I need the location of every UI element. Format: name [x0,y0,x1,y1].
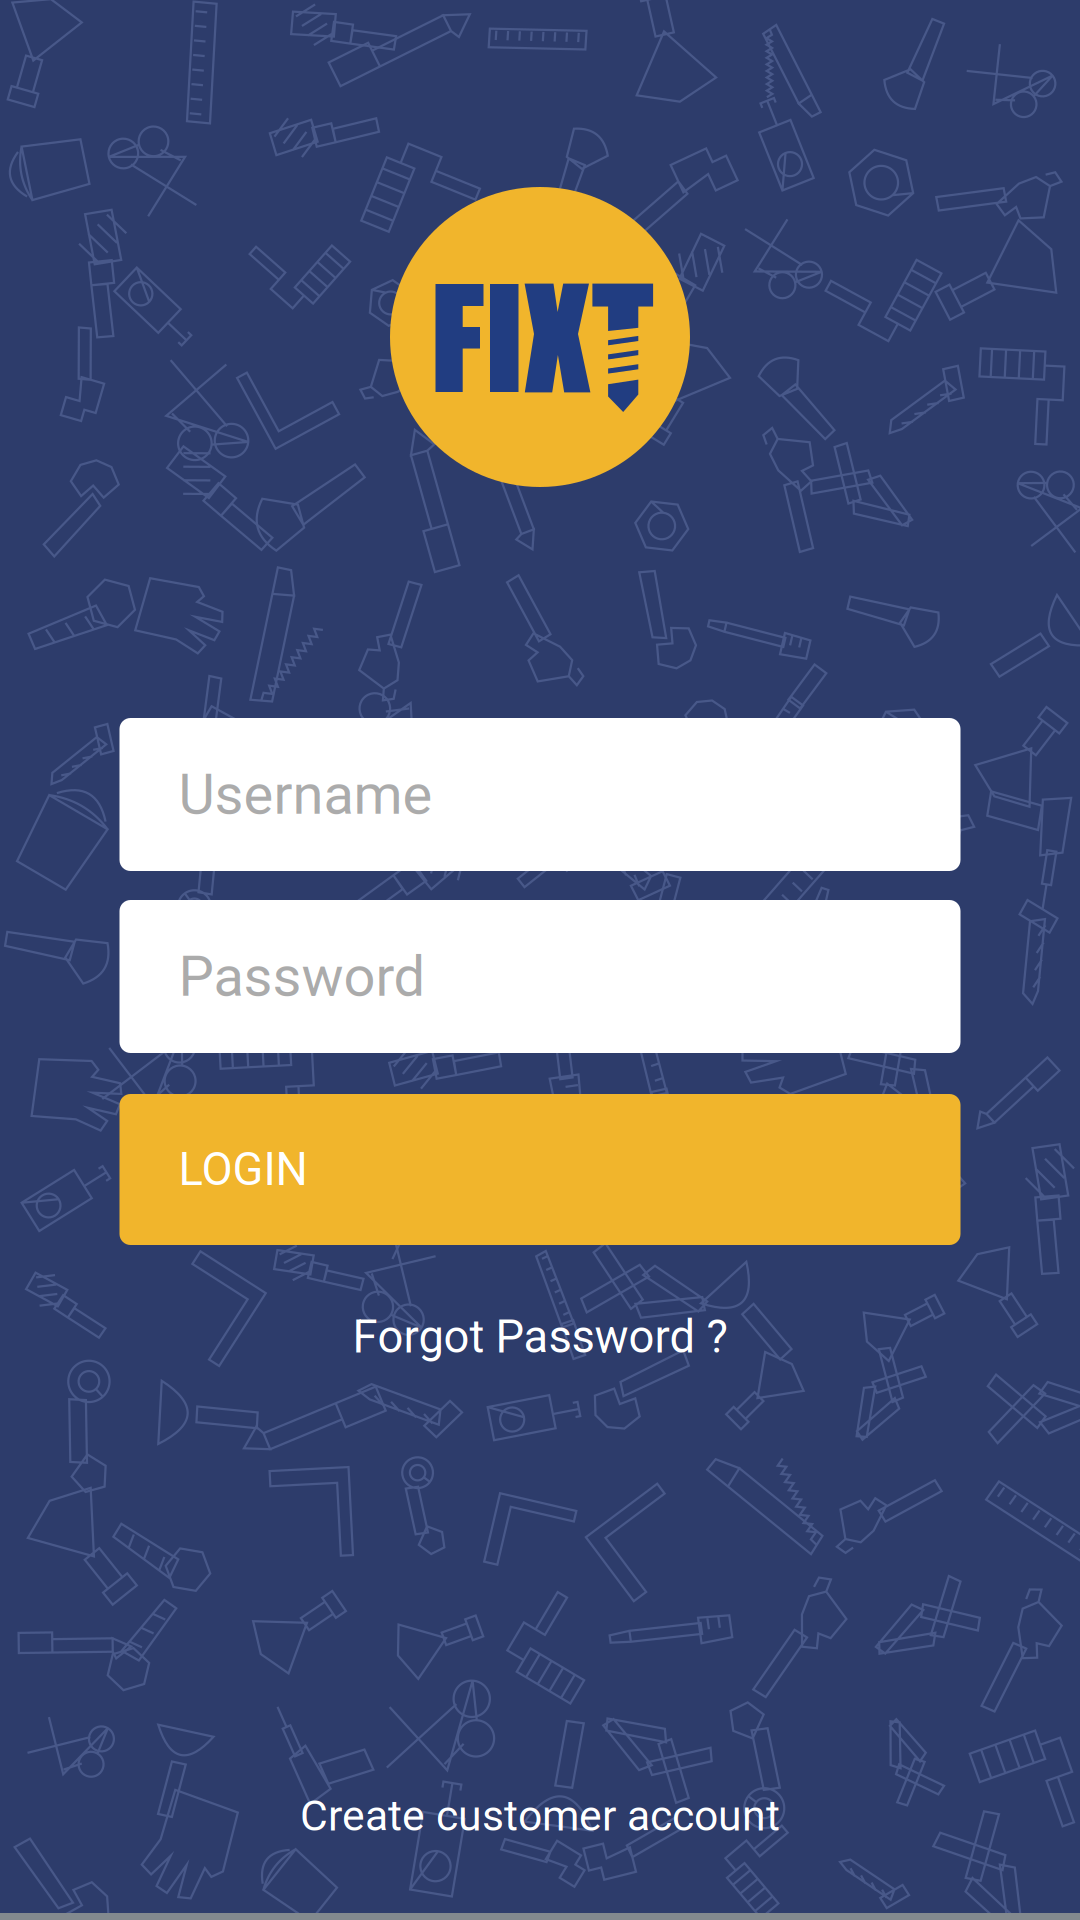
button[interactable]: Forgot Password ? [260,1306,820,1368]
staticText: Password [178,944,425,1009]
staticText: Create customer account [300,1791,780,1841]
staticText: Username [178,762,432,827]
staticText: Forgot Password ? [352,1310,727,1363]
staticText: LOGIN [178,1143,307,1196]
button[interactable]: Create customer account [180,1785,900,1847]
button[interactable]: LOGIN [119,1094,960,1245]
button[interactable]: Password [119,900,960,1053]
button[interactable]: Username [119,718,960,871]
